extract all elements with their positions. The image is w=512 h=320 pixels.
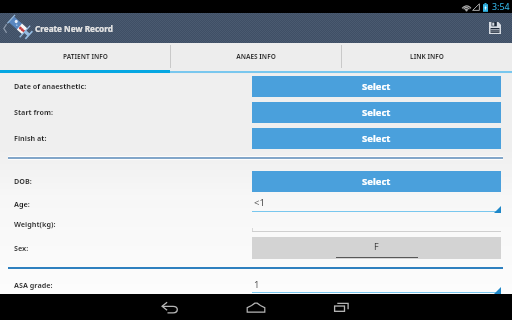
button[interactable]: Create New Record: [0, 13, 512, 43]
button[interactable]: LINK INFO: [342, 43, 512, 70]
staticText: Select: [362, 106, 391, 119]
staticText: <1: [254, 196, 265, 209]
staticText: Date of anaesthetic:: [14, 81, 87, 91]
staticText: Select: [362, 175, 391, 188]
button[interactable]: ANAES INFO: [171, 43, 341, 70]
staticText: Select: [362, 80, 391, 93]
staticText: Create New Record: [35, 23, 113, 34]
button[interactable]: [252, 216, 501, 232]
staticText: ASA grade:: [14, 280, 53, 290]
button[interactable]: 1: [252, 277, 501, 294]
staticText: Sex:: [14, 243, 29, 253]
button[interactable]: Select: [252, 128, 501, 149]
staticText: ANAES INFO: [236, 52, 276, 61]
button[interactable]: Recent apps: [313, 294, 369, 320]
button[interactable]: Home: [228, 294, 284, 320]
staticText: 1: [254, 278, 260, 291]
button[interactable]: PATIENT INFO: [0, 43, 170, 70]
staticText: Select: [362, 132, 391, 145]
button[interactable]: Back: [142, 294, 198, 320]
button[interactable]: Select: [252, 76, 501, 97]
staticText: Finish at:: [14, 133, 47, 143]
staticText: PATIENT INFO: [63, 52, 108, 61]
button[interactable]: <1: [252, 195, 501, 213]
button[interactable]: F: [252, 237, 501, 259]
staticText: 3:54: [492, 1, 510, 13]
staticText: Weight(kg):: [14, 219, 56, 229]
staticText: LINK INFO: [410, 52, 444, 61]
button[interactable]: Save: [481, 13, 509, 43]
staticText: F: [374, 240, 379, 252]
button[interactable]: Select: [252, 171, 501, 192]
staticText: Age:: [14, 199, 30, 209]
staticText: DOB:: [14, 176, 32, 186]
staticText: Start from:: [14, 107, 53, 117]
button[interactable]: Select: [252, 102, 501, 123]
